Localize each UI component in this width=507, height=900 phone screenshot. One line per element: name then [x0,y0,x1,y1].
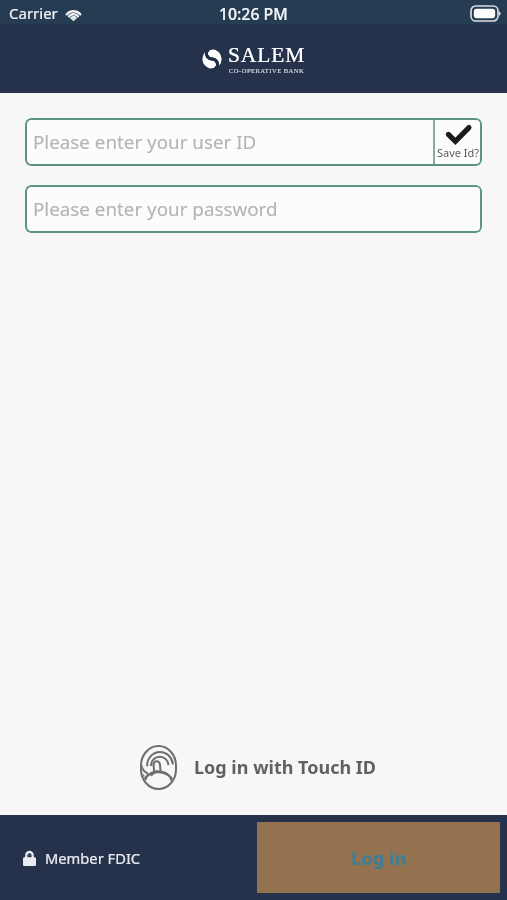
button[interactable]: Please enter your user ID [25,118,434,166]
staticText: Log in [351,845,407,870]
staticText: Please enter your user ID [33,129,257,155]
staticText: 10:26 PM [219,3,288,25]
staticText: Member FDIC [45,848,141,868]
button[interactable]: Member FDIC [23,848,141,868]
staticText: Carrier [9,3,58,23]
button[interactable]: Log in with Touch ID [139,744,377,791]
button[interactable]: Log in [257,822,500,893]
staticText: Please enter your password [33,196,278,222]
button[interactable]: Save Id? [434,118,482,166]
staticText: Log in with Touch ID [194,755,377,780]
button[interactable]: Please enter your password [25,185,482,233]
staticText: Save Id? [437,145,480,160]
staticText: CO-OPERATIVE BANK [229,67,305,74]
staticText: SALEM [228,43,306,67]
